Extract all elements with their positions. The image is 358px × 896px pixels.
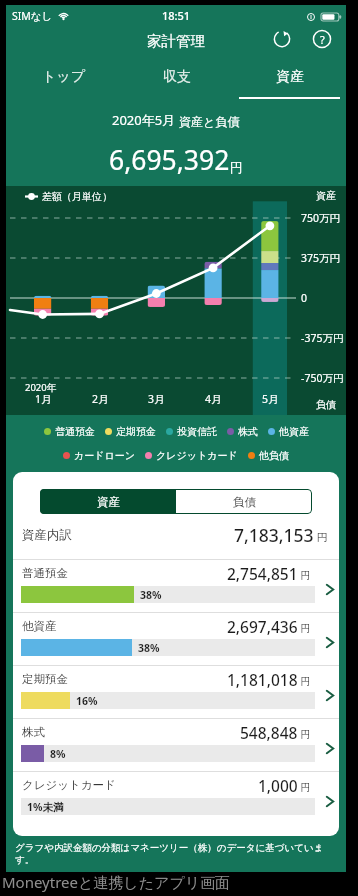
staticText: 負債 [233, 495, 256, 509]
staticText: 7,183,153 [234, 523, 314, 547]
staticText: 6,695,392 [109, 142, 230, 178]
staticText: クレジットカード [156, 449, 238, 462]
staticText: 普通預金 [22, 566, 68, 580]
staticText: 18:51 [162, 8, 191, 23]
staticText: 円 [314, 530, 328, 544]
staticText: 円 [298, 621, 311, 635]
button[interactable]: 他資産 [13, 612, 339, 665]
staticText: 38% [138, 641, 160, 655]
staticText: 資産内訳 [22, 527, 72, 543]
staticText: 収支 [163, 68, 191, 86]
staticText: 0 [301, 291, 308, 305]
button[interactable]: 収支 [120, 56, 233, 97]
staticText: グラフや内訳金額の分類はマネーツリー（株）のデータに基づいています。 [15, 842, 337, 866]
staticText: 548,848 [240, 722, 298, 743]
staticText: 家計管理 [147, 32, 205, 50]
staticText: 5月 [262, 392, 279, 406]
staticText: 2月 [92, 392, 109, 406]
staticText: 3月 [148, 392, 165, 406]
staticText: 1,000 [258, 775, 298, 796]
staticText: -750万円 [301, 371, 344, 385]
button[interactable]: Refresh [269, 26, 295, 52]
staticText: -375万円 [301, 331, 344, 345]
staticText: 他負債 [259, 449, 289, 462]
staticText: 資産 [316, 189, 336, 202]
staticText: 負債 [316, 398, 336, 411]
staticText: 資産 [97, 495, 120, 509]
staticText: 円 [298, 568, 311, 582]
staticText: ? [320, 32, 325, 47]
staticText: 円 [230, 159, 243, 175]
staticText: 1月 [35, 392, 52, 406]
button[interactable]: 資産 [40, 489, 176, 514]
staticText: 1,181,018 [227, 669, 298, 690]
staticText: 2020年5月 [112, 111, 176, 129]
staticText: 定期預金 [116, 425, 156, 438]
staticText: 他資産 [279, 425, 309, 438]
staticText: 1%未満 [27, 800, 64, 814]
staticText: 普通預金 [55, 425, 95, 438]
staticText: カードローン [74, 449, 135, 462]
staticText: 375万円 [301, 251, 341, 265]
staticText: 株式 [238, 425, 258, 438]
staticText: 2,697,436 [227, 616, 298, 637]
staticText: 他資産 [22, 619, 57, 633]
staticText: 4月 [205, 392, 222, 406]
button[interactable]: クレジットカード [13, 771, 339, 824]
staticText: 円 [298, 727, 311, 741]
staticText: 差額（月単位） [42, 190, 112, 203]
staticText: トップ [42, 68, 85, 86]
button[interactable]: 定期預金 [13, 665, 339, 718]
staticText: 750万円 [301, 211, 341, 225]
staticText: 資産 [276, 68, 304, 86]
staticText: Moneytreeと連携したアプリ画面 [2, 872, 231, 892]
staticText: 定期預金 [22, 672, 68, 686]
button[interactable]: トップ [6, 56, 120, 97]
staticText: 円 [298, 780, 311, 794]
button[interactable]: 負債 [176, 489, 312, 514]
staticText: 円 [298, 674, 311, 688]
staticText: 株式 [22, 725, 45, 739]
button[interactable]: 普通預金 [13, 559, 339, 612]
staticText: 資産と負債 [176, 113, 240, 129]
staticText: SIMなし [12, 9, 53, 23]
staticText: 38% [140, 588, 162, 602]
button[interactable]: Help [309, 26, 335, 52]
staticText: 2020年 [25, 381, 57, 394]
staticText: 16% [76, 694, 98, 708]
staticText: クレジットカード [22, 778, 116, 792]
staticText: 2,754,851 [227, 563, 298, 584]
button[interactable]: 資産 [233, 56, 346, 97]
staticText: 投資信託 [177, 425, 217, 438]
staticText: 8% [50, 747, 66, 761]
button[interactable]: 株式 [13, 718, 339, 771]
